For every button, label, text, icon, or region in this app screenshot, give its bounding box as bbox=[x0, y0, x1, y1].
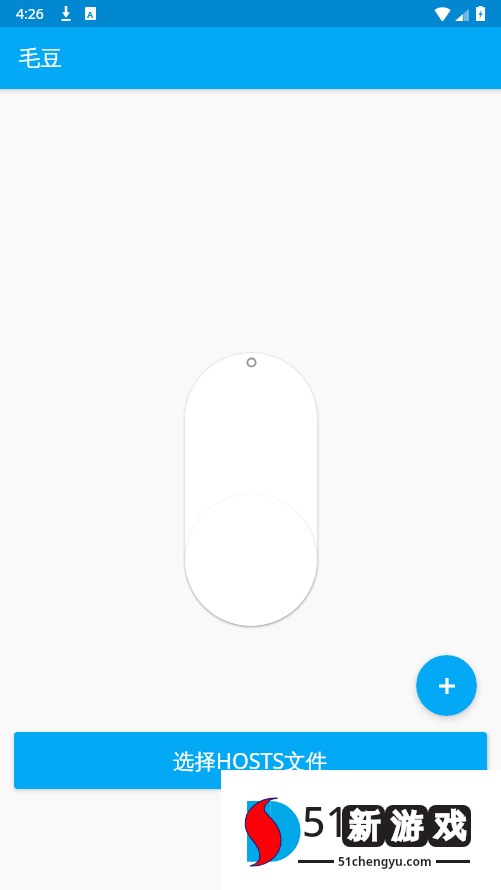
staticText: 4:26 bbox=[16, 4, 44, 23]
staticText: 游 bbox=[391, 806, 423, 846]
staticText: 选择HOSTS文件 bbox=[173, 746, 328, 775]
staticText: 51 bbox=[302, 793, 349, 849]
button[interactable]: Toggle hosts switch, off bbox=[184, 352, 318, 626]
button[interactable]: Add bbox=[416, 655, 477, 716]
staticText: 51chengyu.com bbox=[338, 853, 432, 869]
button[interactable]: 选择HOSTS文件 bbox=[14, 732, 487, 789]
staticText: 新 bbox=[348, 806, 380, 846]
staticText: 毛豆 bbox=[19, 45, 62, 72]
staticText: A bbox=[87, 8, 94, 20]
staticText: 戏 bbox=[434, 806, 466, 846]
